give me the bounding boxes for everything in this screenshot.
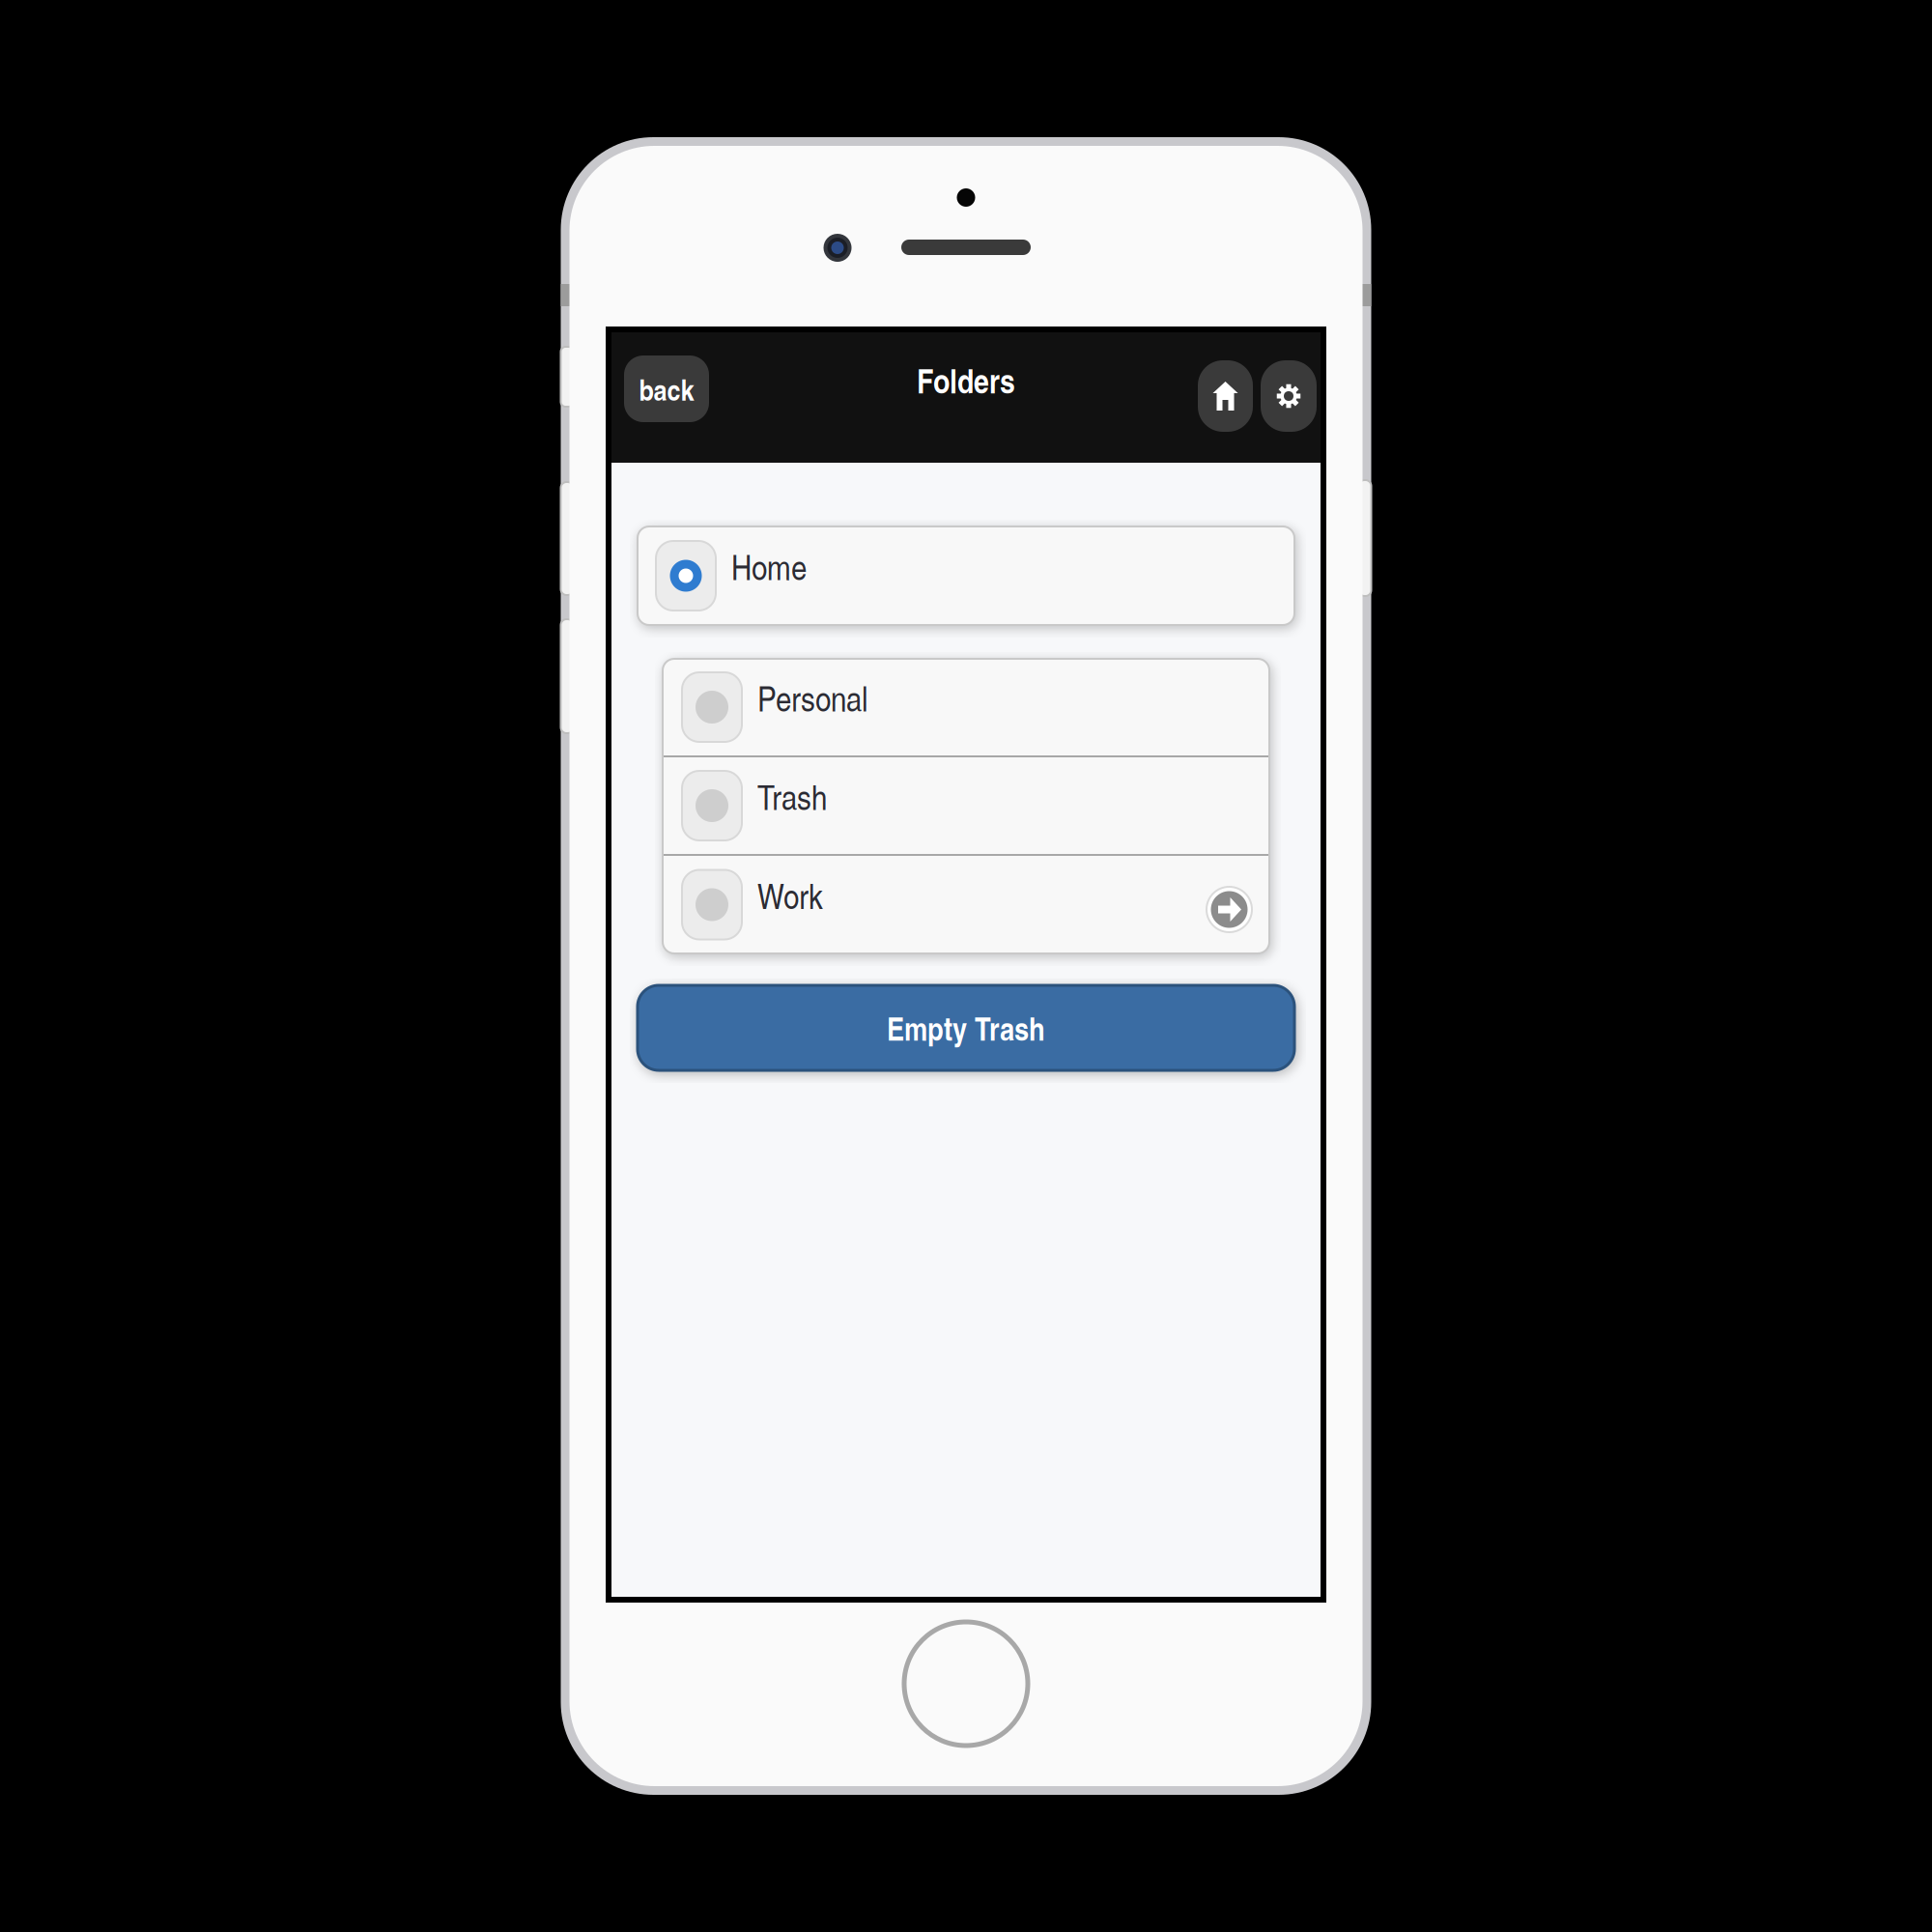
staticText: Trash bbox=[757, 772, 827, 820]
staticText: Home bbox=[731, 542, 807, 590]
button[interactable]: Empty Trash bbox=[638, 985, 1294, 1070]
button[interactable]: back bbox=[624, 355, 709, 422]
staticText: Empty Trash bbox=[887, 1005, 1045, 1051]
button[interactable]: Home bbox=[1198, 360, 1253, 432]
staticText: Folders bbox=[917, 356, 1015, 404]
staticText: Work bbox=[757, 871, 823, 919]
button[interactable]: Work bbox=[663, 856, 1269, 953]
staticText: back bbox=[639, 368, 694, 410]
button[interactable]: Settings bbox=[1261, 360, 1317, 432]
staticText: Personal bbox=[757, 674, 868, 721]
button[interactable]: Home bbox=[638, 526, 1294, 625]
button[interactable]: Personal bbox=[663, 659, 1269, 755]
button[interactable]: Trash bbox=[663, 757, 1269, 854]
